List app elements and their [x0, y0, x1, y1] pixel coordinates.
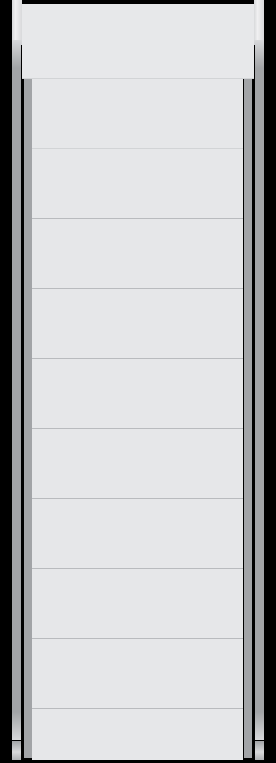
button[interactable]: Item 10 — [32, 709, 243, 763]
